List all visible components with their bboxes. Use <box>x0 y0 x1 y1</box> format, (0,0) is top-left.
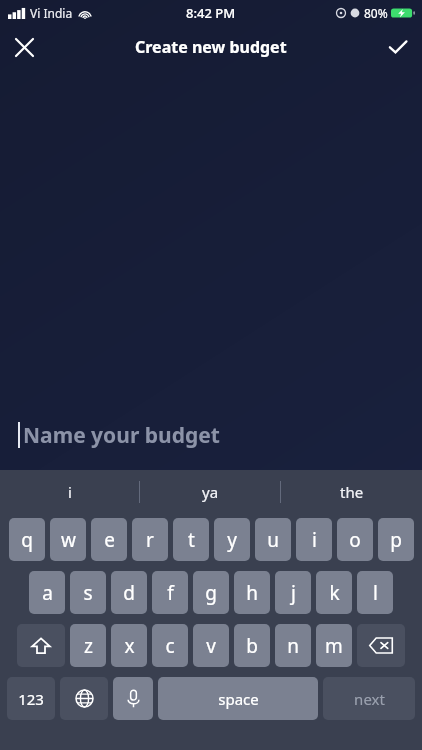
staticText: t <box>188 527 195 553</box>
staticText: 80% <box>364 5 388 21</box>
button[interactable]: Shift <box>17 624 65 667</box>
staticText: the <box>340 482 364 502</box>
button[interactable]: n <box>275 624 311 667</box>
staticText: z <box>84 633 93 659</box>
button[interactable]: x <box>111 624 147 667</box>
button[interactable]: l <box>357 571 393 614</box>
staticText: b <box>246 633 258 659</box>
button[interactable]: k <box>316 571 352 614</box>
button[interactable]: ya <box>140 470 281 514</box>
staticText: q <box>21 527 33 553</box>
staticText: 123 <box>18 689 44 709</box>
staticText: d <box>123 580 135 606</box>
button[interactable]: Voice input <box>113 677 153 720</box>
button[interactable]: v <box>193 624 229 667</box>
button[interactable]: g <box>193 571 229 614</box>
staticText: x <box>124 633 135 659</box>
button[interactable]: Save <box>374 26 422 68</box>
staticText: n <box>287 633 299 659</box>
staticText: v <box>206 633 216 659</box>
button[interactable]: s <box>70 571 106 614</box>
button[interactable]: c <box>152 624 188 667</box>
staticText: 8:42 PM <box>186 4 236 22</box>
button[interactable]: Name your budget <box>0 408 422 462</box>
staticText: a <box>42 580 53 606</box>
staticText: ya <box>202 482 219 502</box>
button[interactable]: h <box>234 571 270 614</box>
button[interactable]: e <box>91 518 127 561</box>
button[interactable]: the <box>281 470 422 514</box>
staticText: c <box>165 633 175 659</box>
button[interactable]: w <box>50 518 86 561</box>
staticText: Create new budget <box>135 36 287 58</box>
staticText: o <box>349 527 361 553</box>
button[interactable]: a <box>29 571 65 614</box>
staticText: g <box>205 580 217 606</box>
staticText: p <box>390 527 402 553</box>
staticText: s <box>83 580 93 606</box>
button[interactable]: i <box>296 518 332 561</box>
button[interactable]: Backspace <box>357 624 405 667</box>
button[interactable]: m <box>316 624 352 667</box>
staticText: f <box>167 580 174 606</box>
staticText: h <box>246 580 258 606</box>
button[interactable]: 123 <box>7 677 55 720</box>
staticText: u <box>267 527 279 553</box>
staticText: i <box>68 482 72 502</box>
staticText: i <box>312 527 317 553</box>
button[interactable]: r <box>132 518 168 561</box>
staticText: w <box>61 527 76 553</box>
button[interactable]: q <box>9 518 45 561</box>
button[interactable]: Change keyboard language <box>60 677 108 720</box>
button[interactable]: t <box>173 518 209 561</box>
staticText: e <box>104 527 115 553</box>
button[interactable]: o <box>337 518 373 561</box>
staticText: y <box>227 527 237 553</box>
button[interactable]: i <box>0 470 140 514</box>
staticText: Name your budget <box>23 421 220 450</box>
staticText: space <box>218 689 259 709</box>
staticText: r <box>146 527 154 553</box>
button[interactable]: y <box>214 518 250 561</box>
staticText: k <box>329 580 340 606</box>
button[interactable]: j <box>275 571 311 614</box>
button[interactable]: d <box>111 571 147 614</box>
staticText: j <box>291 580 296 606</box>
staticText: Vi India <box>30 5 73 21</box>
button[interactable]: next <box>323 677 415 720</box>
button[interactable]: z <box>70 624 106 667</box>
staticText: next <box>354 689 385 709</box>
button[interactable]: p <box>378 518 414 561</box>
button[interactable]: Close <box>0 26 48 68</box>
button[interactable]: space <box>158 677 318 720</box>
button[interactable]: f <box>152 571 188 614</box>
button[interactable]: b <box>234 624 270 667</box>
button[interactable]: u <box>255 518 291 561</box>
staticText: l <box>373 580 378 606</box>
staticText: m <box>325 633 343 659</box>
